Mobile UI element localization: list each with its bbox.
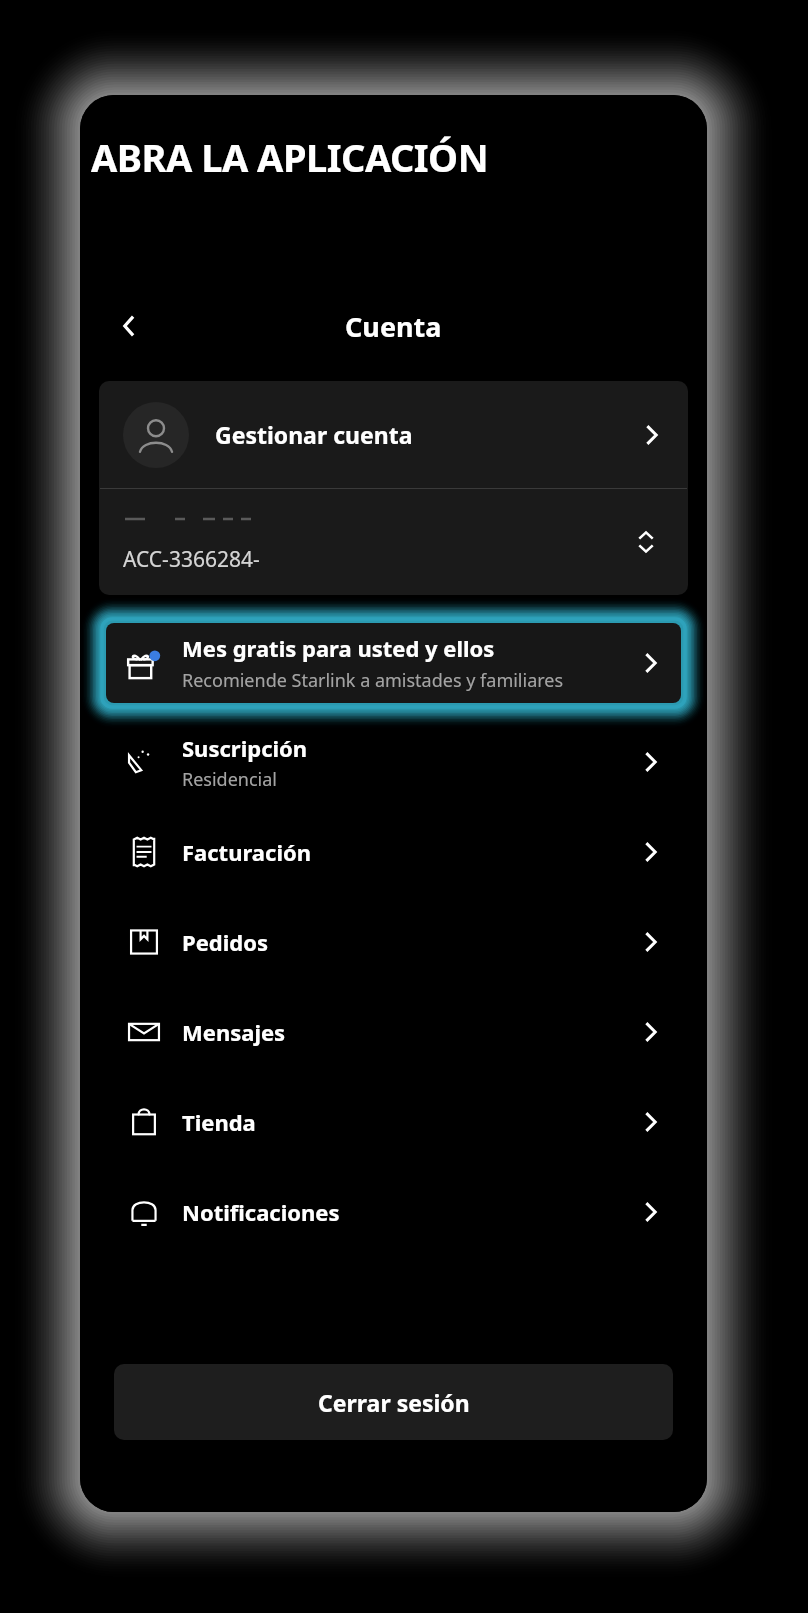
staticText: Tienda (182, 1107, 256, 1137)
staticText: ABRA LA APLICACIÓN (91, 131, 489, 183)
button[interactable]: Notificaciones (80, 1167, 707, 1257)
other: Select account (628, 524, 664, 560)
button[interactable]: Gestionar cuenta (99, 381, 688, 488)
button[interactable]: Pedidos (80, 897, 707, 987)
staticText: Gestionar cuenta (215, 419, 638, 450)
button[interactable]: Cerrar sesión (114, 1364, 673, 1440)
staticText: Suscripción (182, 733, 308, 763)
staticText: Notificaciones (182, 1197, 340, 1227)
staticText: ACC-3366284- (123, 545, 260, 574)
button[interactable]: Facturación (80, 807, 707, 897)
staticText: Cerrar sesión (318, 1387, 470, 1418)
staticText: Facturación (182, 837, 312, 867)
staticText: Mensajes (182, 1017, 286, 1047)
button[interactable]: Back (102, 298, 158, 354)
button[interactable]: Suscripción (80, 717, 707, 807)
staticText: Cuenta (345, 308, 442, 345)
button[interactable]: Mensajes (80, 987, 707, 1077)
button[interactable]: Mes gratis para usted y ellos (102, 619, 685, 707)
staticText: Recomiende Starlink a amistades y famili… (182, 668, 564, 693)
button[interactable]: Tienda (80, 1077, 707, 1167)
staticText: Pedidos (182, 927, 268, 957)
staticText: Mes gratis para usted y ellos (182, 633, 495, 663)
button[interactable]: ACC-3366284- (99, 489, 688, 595)
staticText: Residencial (182, 767, 277, 792)
